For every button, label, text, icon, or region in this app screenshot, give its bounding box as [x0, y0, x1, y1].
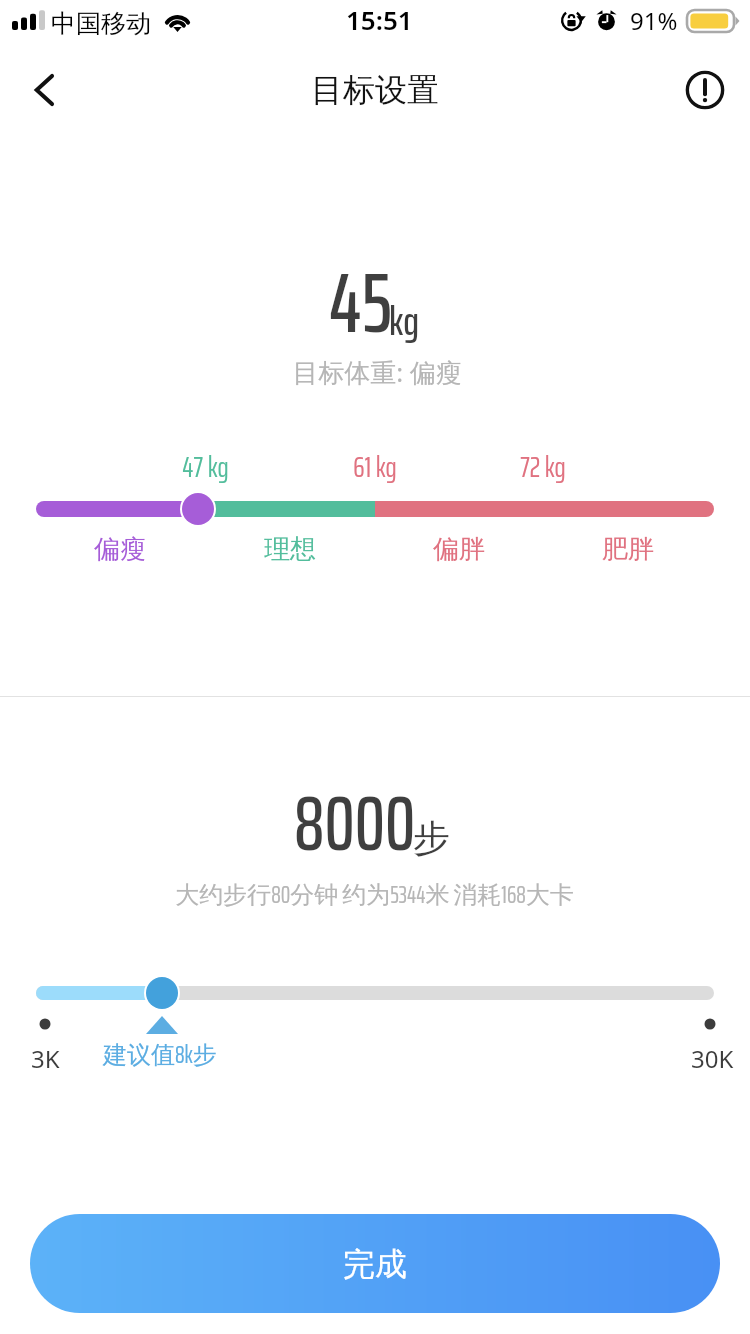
staticText: 肥胖: [602, 533, 654, 566]
other: Rotation lock: [561, 8, 586, 33]
staticText: 偏胖: [433, 533, 485, 566]
staticText: 8000: [294, 764, 416, 884]
button[interactable]: Daily steps slider: [146, 977, 178, 1009]
staticText: 步: [413, 815, 450, 862]
button[interactable]: Back: [0, 52, 90, 128]
staticText: 完成: [343, 1244, 407, 1284]
other: Battery 91%: [687, 8, 740, 34]
staticText: 建议值8k步: [103, 1036, 217, 1074]
staticText: 61 kg: [353, 444, 397, 490]
staticText: 3K: [31, 1042, 60, 1075]
staticText: 目标体重: 偏瘦: [292, 354, 462, 390]
staticText: 目标设置: [311, 70, 439, 110]
button[interactable]: Target weight slider: [182, 493, 214, 525]
staticText: 47 kg: [182, 444, 229, 490]
staticText: 15:51: [346, 2, 413, 37]
staticText: 大约步行80分钟 约为5344米 消耗168大卡: [175, 876, 574, 914]
staticText: kg: [389, 288, 420, 353]
staticText: 30K: [691, 1042, 734, 1075]
staticText: 45: [329, 237, 393, 369]
button[interactable]: Help: [660, 52, 750, 128]
button[interactable]: 完成: [30, 1214, 720, 1313]
staticText: 理想: [264, 533, 316, 566]
staticText: 72 kg: [520, 444, 566, 490]
staticText: 中国移动: [51, 8, 151, 39]
staticText: 91%: [630, 4, 678, 37]
other: Alarm: [596, 10, 617, 31]
staticText: 偏瘦: [94, 533, 146, 566]
